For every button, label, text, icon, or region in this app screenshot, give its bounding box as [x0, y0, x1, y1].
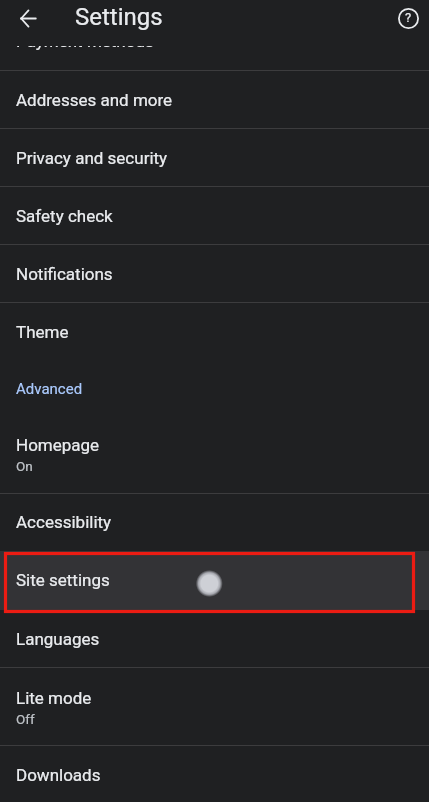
button[interactable]: Notifications — [0, 245, 429, 303]
button[interactable]: Languages — [0, 610, 429, 668]
staticText: Theme — [16, 322, 69, 342]
staticText: Languages — [16, 629, 100, 649]
staticText: Notifications — [16, 264, 113, 284]
button[interactable]: Back — [10, 0, 46, 36]
staticText: Homepage — [16, 435, 100, 455]
staticText: Settings — [75, 3, 163, 31]
button[interactable]: Site settings — [0, 551, 429, 610]
staticText: Safety check — [16, 206, 113, 226]
button[interactable]: Safety check — [0, 187, 429, 245]
staticText: Off — [16, 711, 35, 727]
staticText: On — [16, 458, 33, 474]
staticText: Accessibility — [16, 512, 112, 532]
staticText: Payment methods — [16, 31, 154, 51]
button[interactable]: Accessibility — [0, 494, 429, 551]
staticText: Downloads — [16, 765, 101, 785]
staticText: Addresses and more — [16, 90, 173, 110]
button[interactable]: Downloads — [0, 746, 429, 802]
button[interactable]: Homepage — [0, 417, 429, 494]
staticText: Privacy and security — [16, 148, 168, 168]
button[interactable]: Help — [390, 0, 426, 36]
button[interactable]: Privacy and security — [0, 129, 429, 187]
button[interactable]: Payment methods — [0, 13, 429, 71]
button[interactable]: Lite mode — [0, 668, 429, 746]
staticText: Site settings — [16, 570, 110, 590]
staticText: Advanced — [16, 380, 83, 398]
button[interactable]: Addresses and more — [0, 71, 429, 129]
staticText: Lite mode — [16, 688, 92, 708]
button[interactable]: Theme — [0, 303, 429, 361]
staticText: ? — [405, 10, 412, 25]
